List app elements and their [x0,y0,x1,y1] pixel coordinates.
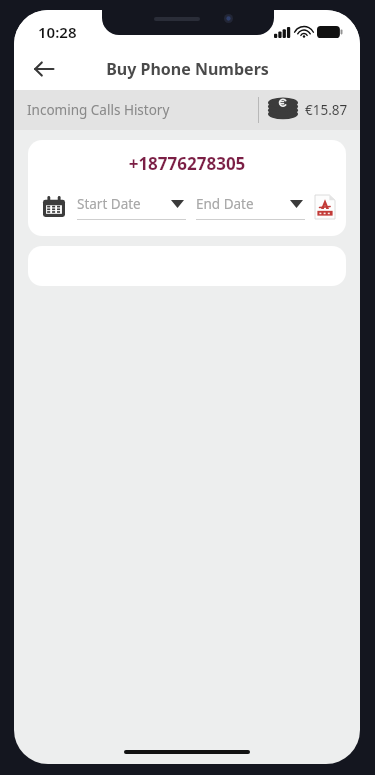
button[interactable]: Pick date [39,192,69,222]
button[interactable]: End Date [196,195,305,220]
staticText: End Date [196,195,290,213]
staticText: €15.87 [305,101,348,119]
staticText: Start Date [77,195,171,213]
staticText: 10:28 [38,22,77,42]
button[interactable]: Back [24,49,64,89]
staticText: Incoming Calls History [27,101,170,119]
staticText: Buy Phone Numbers [106,58,269,80]
button[interactable]: Export PDF [314,194,336,220]
button[interactable]: €15.87 [259,97,360,123]
button[interactable]: Start Date [77,195,186,220]
staticText: +18776278305 [28,152,346,175]
